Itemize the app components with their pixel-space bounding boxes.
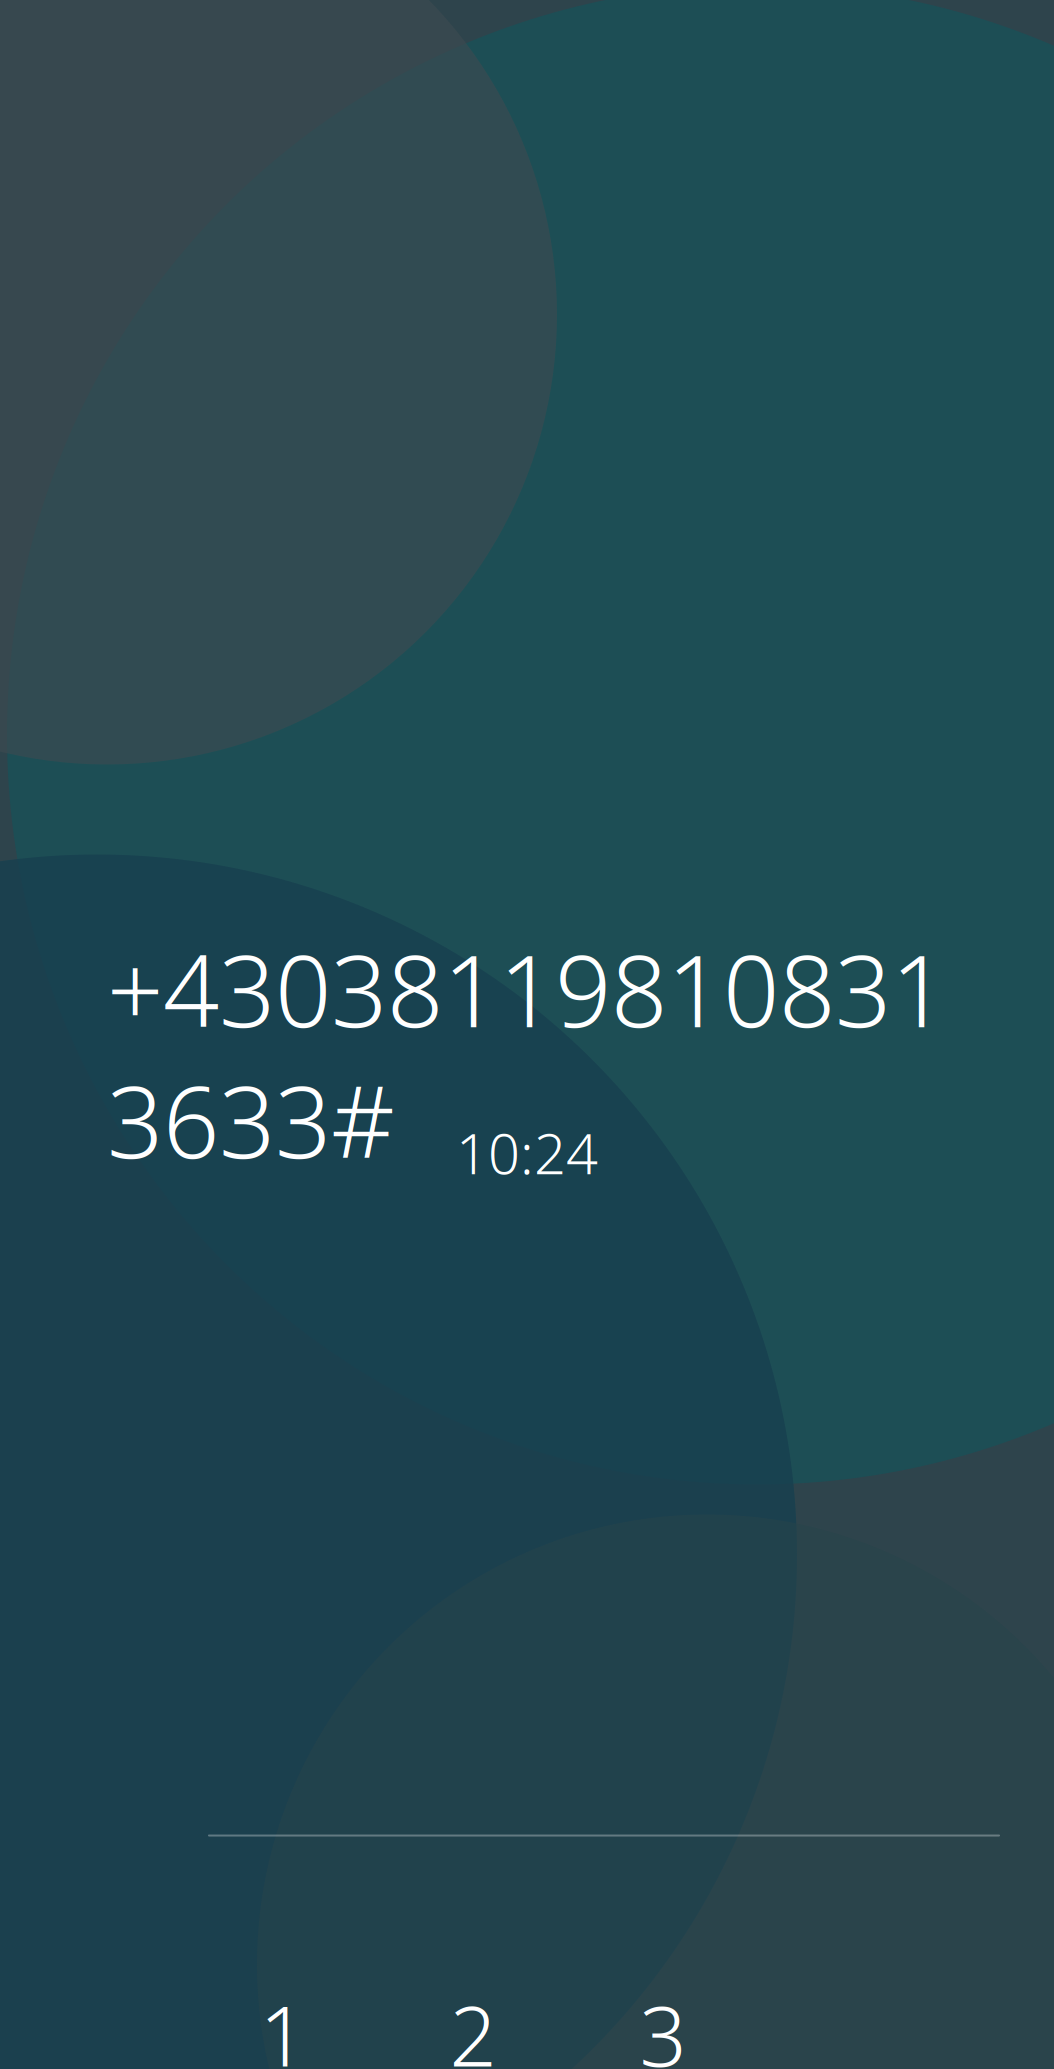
staticText: 10:24 <box>456 1115 598 1190</box>
staticText: +43038119810831 3633# <box>107 923 947 1185</box>
button[interactable]: 2 <box>380 1959 566 2069</box>
button[interactable]: 3 <box>570 1959 756 2069</box>
staticText: 2 <box>449 1980 496 2069</box>
staticText: 1 <box>259 1980 306 2069</box>
staticText: 3 <box>639 1980 686 2069</box>
button[interactable]: 1 <box>190 1959 376 2069</box>
